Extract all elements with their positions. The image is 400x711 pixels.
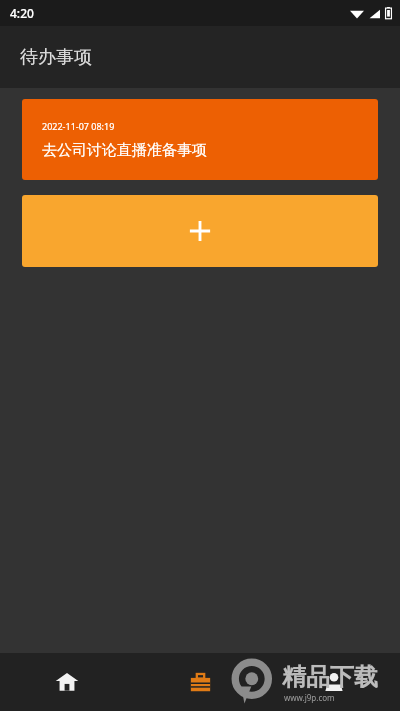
button[interactable]: Add todo bbox=[22, 195, 378, 267]
staticText: www.j9p.com bbox=[284, 692, 335, 703]
button[interactable]: Tasks bbox=[134, 653, 267, 711]
button[interactable]: Profile bbox=[267, 653, 400, 711]
staticText: 2022-11-07 08:19 bbox=[42, 120, 115, 132]
staticText: 4:20 bbox=[10, 5, 34, 21]
staticText: 待办事项 bbox=[20, 46, 92, 69]
staticText: 去公司讨论直播准备事项 bbox=[42, 141, 207, 160]
staticText: 精品下载 bbox=[282, 662, 378, 692]
button[interactable]: Home bbox=[0, 653, 134, 711]
button[interactable]: 2022-11-07 08:19 bbox=[22, 99, 378, 180]
